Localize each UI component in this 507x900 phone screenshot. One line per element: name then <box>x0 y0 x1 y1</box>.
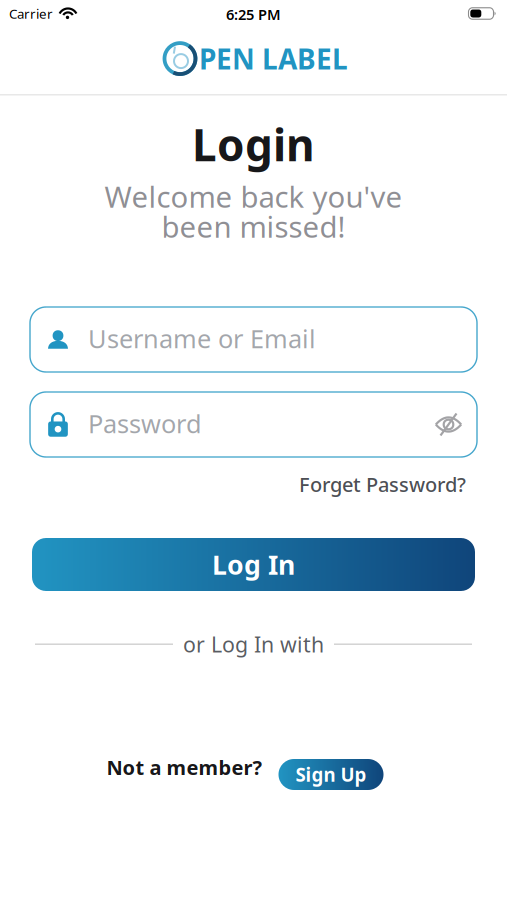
staticText: Username or Email <box>88 322 316 355</box>
staticText: Forget Password? <box>299 471 466 498</box>
staticText: Password <box>88 407 202 440</box>
button[interactable]: Log In <box>32 538 475 591</box>
button[interactable]: Show password <box>435 414 462 435</box>
button[interactable]: Forget Password? <box>299 471 466 498</box>
staticText: or Log In with <box>183 630 324 658</box>
staticText: PEN LABEL <box>199 40 348 77</box>
button[interactable]: Sign Up <box>278 759 383 790</box>
button[interactable]: Username or Email <box>30 307 477 372</box>
staticText: Log In <box>212 547 295 582</box>
staticText: Sign Up <box>295 762 366 787</box>
staticText: Welcome back you've <box>104 177 402 216</box>
staticText: Carrier <box>9 5 53 22</box>
staticText: 6:25 PM <box>226 4 281 24</box>
button[interactable]: Password <box>30 392 477 457</box>
staticText: Not a member? <box>106 754 262 781</box>
staticText: Login <box>192 115 315 173</box>
staticText: been missed! <box>161 207 345 246</box>
